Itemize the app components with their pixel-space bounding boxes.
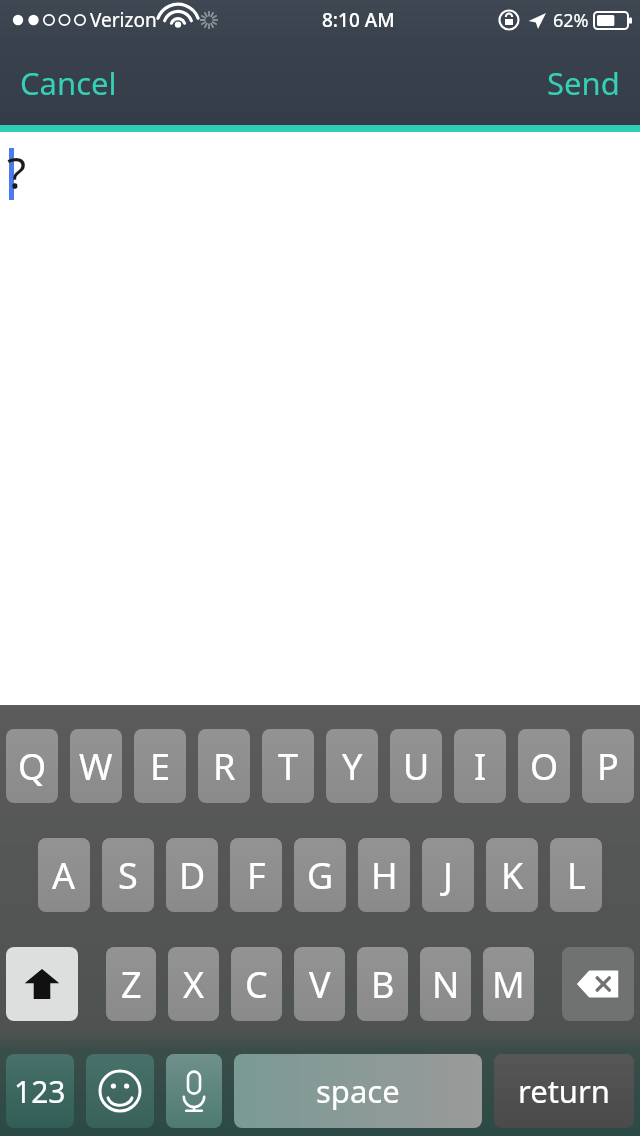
button[interactable]: H — [358, 838, 410, 912]
staticText: J — [443, 851, 453, 900]
button[interactable]: K — [486, 838, 538, 912]
staticText: K — [501, 851, 524, 900]
button[interactable]: G — [294, 838, 346, 912]
staticText: L — [567, 851, 586, 900]
button[interactable]: Z — [106, 947, 156, 1021]
button[interactable]: Dictation — [166, 1054, 222, 1128]
staticText: X — [183, 960, 205, 1009]
button[interactable]: M — [483, 947, 534, 1021]
button[interactable]: P — [582, 729, 634, 803]
button[interactable]: A — [38, 838, 90, 912]
staticText: Q — [18, 742, 47, 791]
button[interactable]: O — [518, 729, 570, 803]
staticText: 62% — [553, 8, 589, 33]
button[interactable]: Backspace — [562, 947, 634, 1021]
staticText: H — [371, 851, 398, 900]
button[interactable]: X — [168, 947, 219, 1021]
staticText: O — [530, 742, 559, 791]
staticText: Send — [547, 62, 620, 104]
staticText: return — [518, 1070, 610, 1112]
button[interactable]: return — [494, 1054, 634, 1128]
button[interactable]: B — [357, 947, 408, 1021]
staticText: N — [432, 960, 460, 1009]
button[interactable]: W — [70, 729, 122, 803]
button[interactable]: N — [420, 947, 471, 1021]
button[interactable]: L — [550, 838, 602, 912]
button[interactable]: T — [262, 729, 314, 803]
button[interactable]: F — [230, 838, 282, 912]
button[interactable]: C — [231, 947, 282, 1021]
staticText: V — [309, 960, 331, 1009]
button[interactable]: Emoji — [86, 1054, 154, 1128]
staticText: I — [474, 742, 487, 791]
button[interactable]: space — [234, 1054, 482, 1128]
staticText: E — [150, 742, 171, 791]
staticText: P — [597, 742, 619, 791]
button[interactable]: S — [102, 838, 154, 912]
staticText: space — [316, 1070, 400, 1112]
staticText: D — [179, 851, 206, 900]
button[interactable]: Shift — [6, 947, 78, 1021]
staticText: U — [403, 742, 430, 791]
button[interactable]: J — [422, 838, 474, 912]
staticText: M — [492, 960, 525, 1009]
staticText: 8:10 AM — [322, 7, 395, 33]
staticText: 123 — [14, 1071, 66, 1112]
staticText: ? — [7, 142, 27, 202]
button[interactable]: Y — [326, 729, 378, 803]
button[interactable]: I — [454, 729, 506, 803]
button[interactable]: 123 — [6, 1054, 74, 1128]
staticText: Cancel — [20, 62, 117, 104]
button[interactable]: Send — [541, 54, 626, 112]
staticText: Y — [342, 742, 363, 791]
staticText: A — [52, 851, 76, 900]
button[interactable]: R — [198, 729, 250, 803]
staticText: Verizon — [90, 7, 157, 33]
button[interactable]: V — [294, 947, 345, 1021]
button[interactable]: D — [166, 838, 218, 912]
button[interactable]: U — [390, 729, 442, 803]
staticText: W — [79, 742, 113, 791]
staticText: Z — [121, 960, 142, 1009]
staticText: C — [245, 960, 268, 1009]
button[interactable]: E — [134, 729, 186, 803]
staticText: R — [213, 742, 236, 791]
staticText: G — [307, 851, 334, 900]
staticText: F — [247, 851, 266, 900]
staticText: B — [371, 960, 395, 1009]
staticText: S — [118, 851, 138, 900]
button[interactable]: Cancel — [14, 54, 123, 112]
button[interactable]: Q — [6, 729, 58, 803]
staticText: T — [278, 742, 299, 791]
